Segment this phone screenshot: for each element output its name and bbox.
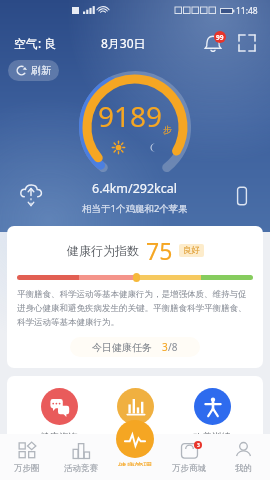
button[interactable]: 健康行为指数 — [7, 226, 263, 368]
staticText: 相当于1个鸡腿和2个苹果 — [82, 202, 188, 215]
staticText: 今日健康任务 — [92, 341, 152, 354]
staticText: 万步商城 — [172, 463, 206, 474]
button[interactable]: 改善训练 — [187, 388, 237, 443]
staticText: 3 — [162, 340, 168, 354]
staticText: 3 — [197, 442, 200, 449]
staticText: 6.4km/292kcal — [92, 180, 178, 197]
staticText: 万步圈 — [14, 463, 40, 474]
button[interactable]: 我的 — [216, 434, 270, 480]
staticText: 空气: 良 — [14, 35, 57, 51]
button[interactable]: 活动竞赛 — [54, 434, 108, 480]
staticText: 平衡膳食、科学运动等基本健康行为，是增强体质、维持与促进身心健康和避免疾病发生的… — [17, 289, 253, 328]
staticText: 健康管理 — [118, 461, 152, 466]
button[interactable]: 刷新 — [8, 60, 59, 81]
button[interactable]: 3 — [162, 434, 216, 480]
staticText: 健康评估 — [116, 431, 154, 443]
staticText: 我的 — [235, 463, 252, 474]
button[interactable]: 健康管理 — [108, 420, 162, 466]
button[interactable]: 今日健康任务 — [70, 337, 200, 357]
staticText: 健康咨询 — [40, 431, 78, 443]
button[interactable]: Device — [228, 182, 256, 210]
staticText: 刷新 — [31, 64, 51, 77]
staticText: /8 — [168, 340, 178, 354]
button[interactable]: Scan — [236, 32, 258, 54]
staticText: 75 — [146, 235, 173, 266]
button[interactable]: 健康评估 — [110, 388, 160, 443]
staticText: 良好 — [183, 245, 200, 256]
staticText: 活动竞赛 — [64, 463, 98, 474]
button[interactable]: Notifications — [200, 30, 226, 56]
staticText: 99 — [216, 33, 224, 42]
staticText: 11:48 — [236, 5, 258, 17]
button[interactable]: 健康咨询 — [34, 388, 84, 443]
staticText: 9189 — [98, 97, 163, 135]
staticText: 步 — [163, 124, 172, 135]
button[interactable]: Upload data — [14, 178, 48, 212]
staticText: 8月30日 — [101, 35, 146, 51]
button[interactable]: 万步圈 — [0, 434, 54, 480]
staticText: 健康行为指数 — [67, 243, 139, 258]
staticText: 改善训练 — [193, 431, 231, 443]
